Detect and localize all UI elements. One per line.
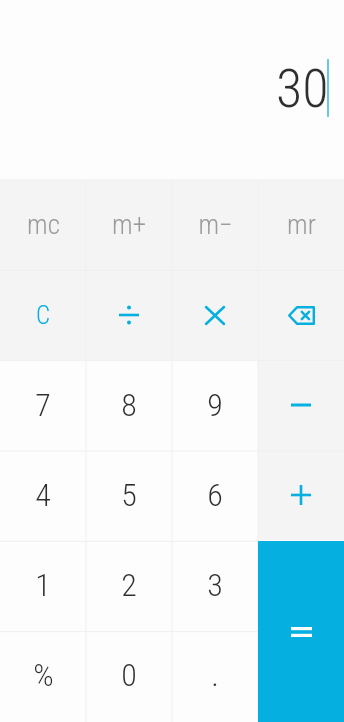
button[interactable]: 8 xyxy=(86,360,172,450)
button[interactable]: m+ xyxy=(86,180,172,270)
staticText: . xyxy=(211,656,219,694)
button[interactable]: Equals xyxy=(258,541,344,722)
staticText: 0 xyxy=(121,656,137,694)
button[interactable]: 9 xyxy=(172,360,258,450)
button[interactable]: Divide xyxy=(86,270,172,360)
button[interactable]: m− xyxy=(172,180,258,270)
button[interactable]: mc xyxy=(0,180,86,270)
staticText: 1 xyxy=(35,566,51,604)
staticText: 2 xyxy=(121,566,137,604)
button[interactable]: 0 xyxy=(86,630,172,720)
button[interactable]: Clear xyxy=(0,270,86,360)
button[interactable]: Plus xyxy=(258,450,344,540)
staticText: 9 xyxy=(207,386,223,424)
staticText: C xyxy=(36,301,51,330)
button[interactable]: 4 xyxy=(0,450,86,540)
button[interactable]: Backspace xyxy=(258,270,344,360)
staticText: 30 xyxy=(276,57,329,120)
button[interactable]: Multiply xyxy=(172,270,258,360)
button[interactable]: 5 xyxy=(86,450,172,540)
staticText: m− xyxy=(198,209,233,241)
staticText: 6 xyxy=(207,476,223,514)
button[interactable]: . xyxy=(172,630,258,720)
button[interactable]: 2 xyxy=(86,540,172,630)
staticText: % xyxy=(33,656,54,694)
button[interactable]: mr xyxy=(258,180,344,270)
staticText: 8 xyxy=(121,386,137,424)
staticText: mc xyxy=(27,209,60,241)
button[interactable]: 3 xyxy=(172,540,258,630)
button[interactable]: 6 xyxy=(172,450,258,540)
button[interactable]: % xyxy=(0,630,86,720)
staticText: m+ xyxy=(112,209,146,241)
staticText: 5 xyxy=(121,476,137,514)
staticText: mr xyxy=(287,209,316,241)
button[interactable]: Minus xyxy=(258,360,344,450)
button[interactable]: 1 xyxy=(0,540,86,630)
staticText: 7 xyxy=(35,386,51,424)
button[interactable]: 7 xyxy=(0,360,86,450)
staticText: 3 xyxy=(207,566,223,604)
staticText: 4 xyxy=(35,476,51,514)
